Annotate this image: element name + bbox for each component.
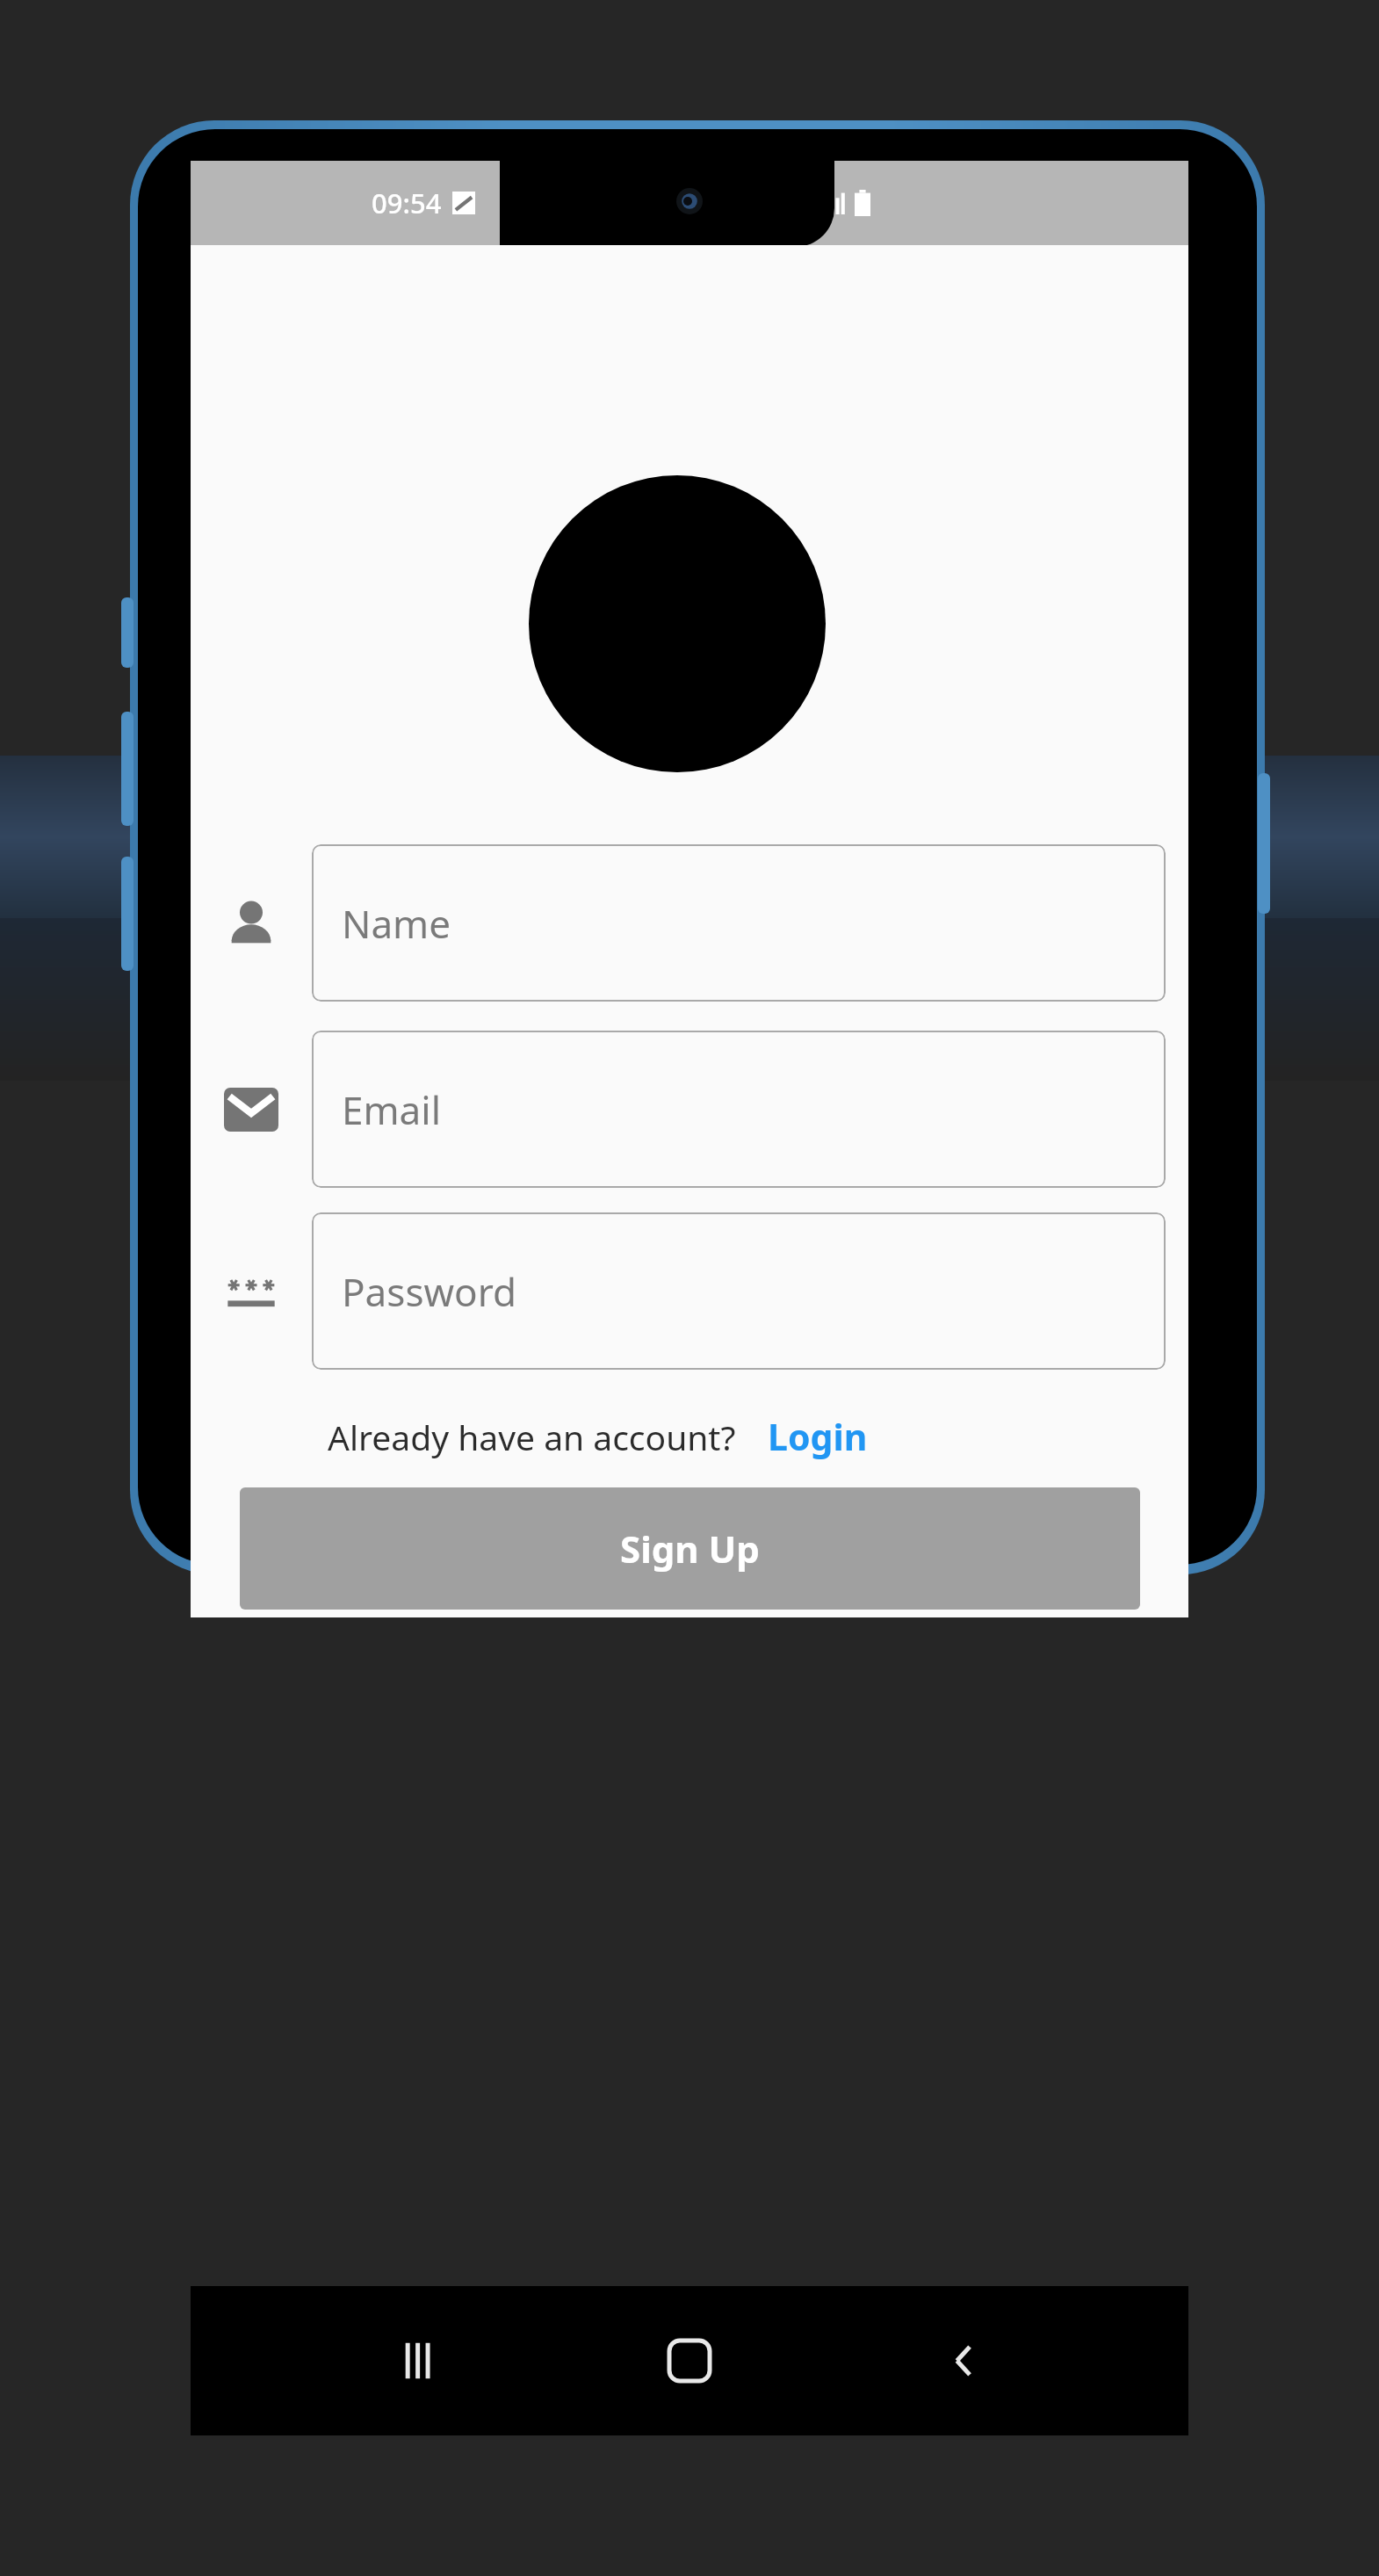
- staticText: Login: [768, 1412, 868, 1461]
- button[interactable]: Sign Up: [240, 1487, 1140, 1610]
- button[interactable]: Profile photo: [529, 475, 826, 772]
- button[interactable]: Back: [915, 2312, 1012, 2409]
- button[interactable]: Password: [312, 1212, 1166, 1370]
- button[interactable]: Email: [312, 1031, 1166, 1188]
- button[interactable]: Name: [312, 844, 1166, 1002]
- staticText: Sign Up: [620, 1523, 760, 1574]
- button[interactable]: Recent apps: [368, 2312, 465, 2409]
- staticText: 09:54: [372, 185, 442, 221]
- staticText: Already have an account?: [328, 1414, 736, 1460]
- staticText: Email: [342, 1083, 441, 1136]
- button[interactable]: Home: [641, 2312, 738, 2409]
- staticText: Password: [342, 1265, 517, 1318]
- button[interactable]: Login: [768, 1412, 868, 1461]
- staticText: Name: [342, 897, 451, 950]
